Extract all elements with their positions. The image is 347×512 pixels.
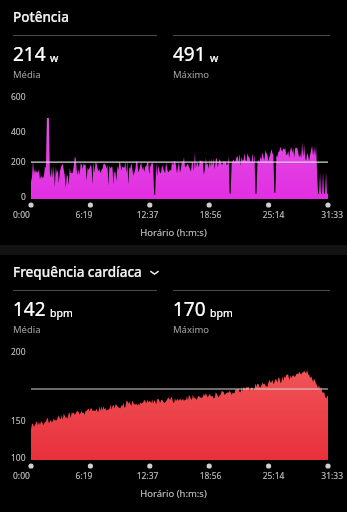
staticText: bpm xyxy=(50,306,73,320)
staticText: 150 xyxy=(11,415,26,427)
button[interactable]: Potência xyxy=(0,6,347,28)
staticText: 6:19 xyxy=(52,209,116,221)
staticText: 12:37 xyxy=(116,470,179,482)
other: Expandir xyxy=(148,266,161,279)
staticText: w xyxy=(210,51,219,65)
staticText: Horário (h:m:s) xyxy=(0,487,347,500)
staticText: w xyxy=(50,51,59,65)
staticText: 400 xyxy=(11,126,26,138)
staticText: 31:33 xyxy=(305,470,343,482)
staticText: 0:00 xyxy=(13,470,52,482)
staticText: 18:56 xyxy=(179,470,242,482)
staticText: 0:00 xyxy=(13,209,52,221)
staticText: 170 xyxy=(173,296,206,322)
staticText: Máximo xyxy=(173,323,210,336)
staticText: 491 xyxy=(173,41,206,67)
staticText: Potência xyxy=(13,8,69,26)
staticText: 6:19 xyxy=(52,470,116,482)
staticText: 25:14 xyxy=(242,209,305,221)
staticText: 0 xyxy=(21,191,26,203)
staticText: 600 xyxy=(11,91,26,103)
staticText: Média xyxy=(13,68,41,81)
staticText: 18:56 xyxy=(179,209,242,221)
staticText: Máximo xyxy=(173,68,210,81)
button[interactable]: Frequência cardíaca xyxy=(0,261,347,283)
staticText: bpm xyxy=(210,306,233,320)
staticText: 200 xyxy=(11,346,26,358)
staticText: 200 xyxy=(11,156,26,168)
staticText: 214 xyxy=(13,41,46,67)
staticText: Média xyxy=(13,323,41,336)
staticText: 25:14 xyxy=(242,470,305,482)
staticText: 100 xyxy=(11,452,26,464)
staticText: Horário (h:m:s) xyxy=(0,226,347,239)
staticText: 31:33 xyxy=(305,209,343,221)
staticText: 142 xyxy=(13,296,46,322)
staticText: Frequência cardíaca xyxy=(13,263,142,281)
staticText: 12:37 xyxy=(116,209,179,221)
